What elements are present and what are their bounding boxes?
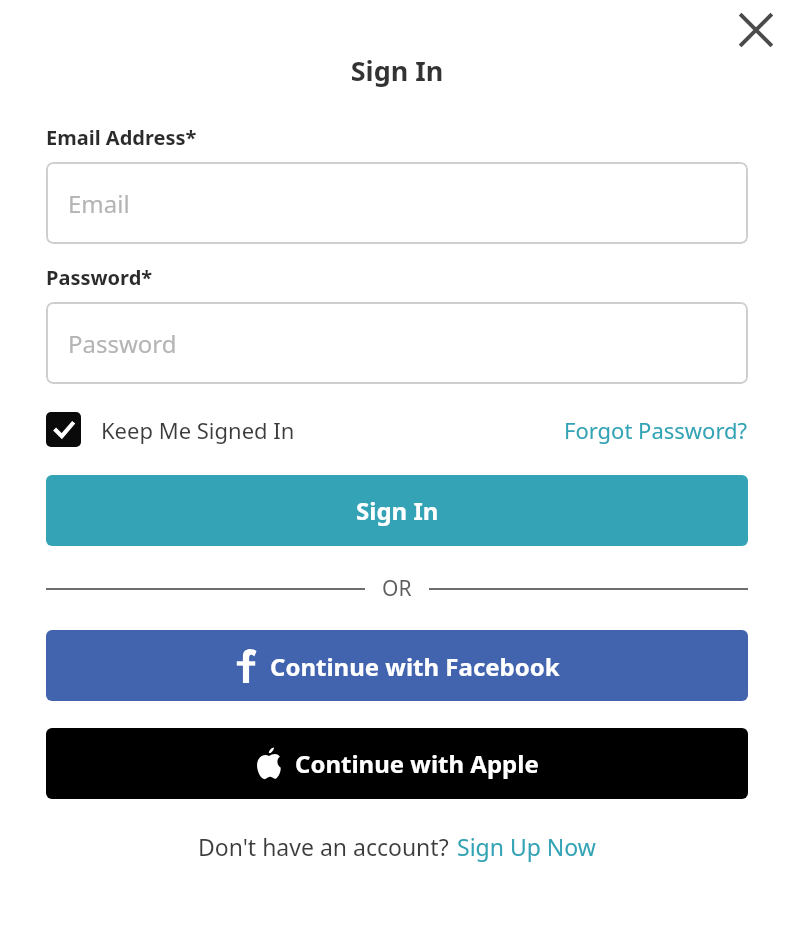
staticText: Password* [46, 264, 153, 291]
staticText: Sign In [0, 52, 794, 89]
button[interactable]: Sign Up Now [457, 831, 596, 862]
staticText: OR [382, 574, 412, 603]
staticText: Don't have an account? [198, 831, 449, 862]
button[interactable]: Close [730, 4, 782, 56]
staticText: Forgot Password? [564, 415, 748, 445]
button[interactable]: Password [46, 302, 748, 384]
staticText: Email Address* [46, 124, 197, 151]
button[interactable]: Forgot Password? [564, 415, 748, 445]
staticText: Sign Up Now [457, 831, 596, 862]
staticText: Email [68, 187, 130, 220]
staticText: Continue with Apple [295, 747, 539, 780]
staticText: Password [68, 327, 177, 360]
button[interactable]: Continue with Facebook [46, 630, 748, 701]
staticText: Continue with Facebook [270, 650, 560, 683]
button[interactable]: Continue with Apple [46, 728, 748, 799]
staticText: Keep Me Signed In [101, 415, 295, 445]
button[interactable]: Email [46, 162, 748, 244]
staticText: Sign In [356, 494, 439, 527]
button[interactable]: Keep Me Signed In [46, 412, 295, 447]
button[interactable]: Sign In [46, 475, 748, 546]
